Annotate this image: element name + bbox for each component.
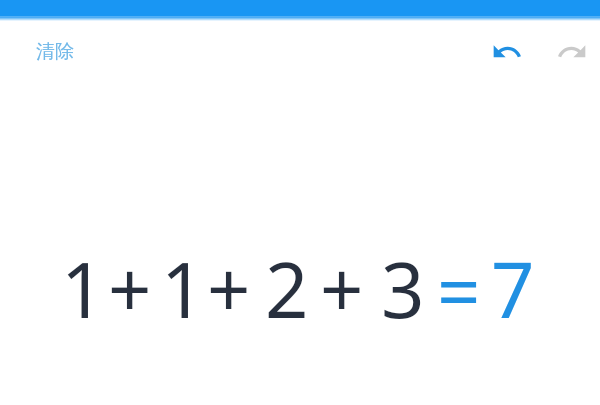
staticText: 清除: [36, 40, 74, 64]
staticText: +: [320, 237, 364, 341]
staticText: 3: [381, 237, 425, 341]
staticText: =: [437, 239, 481, 343]
button[interactable]: 清除: [20, 29, 90, 75]
staticText: +: [207, 237, 251, 341]
button[interactable]: Redo: [549, 28, 595, 74]
staticText: 1: [61, 237, 105, 341]
staticText: +: [108, 237, 152, 341]
other: 1 + 1 + 2 + 3 = 7: [0, 81, 600, 405]
button[interactable]: Undo: [484, 28, 530, 74]
staticText: 2: [265, 237, 309, 341]
staticText: 7: [491, 237, 535, 341]
staticText: 1: [161, 237, 205, 341]
